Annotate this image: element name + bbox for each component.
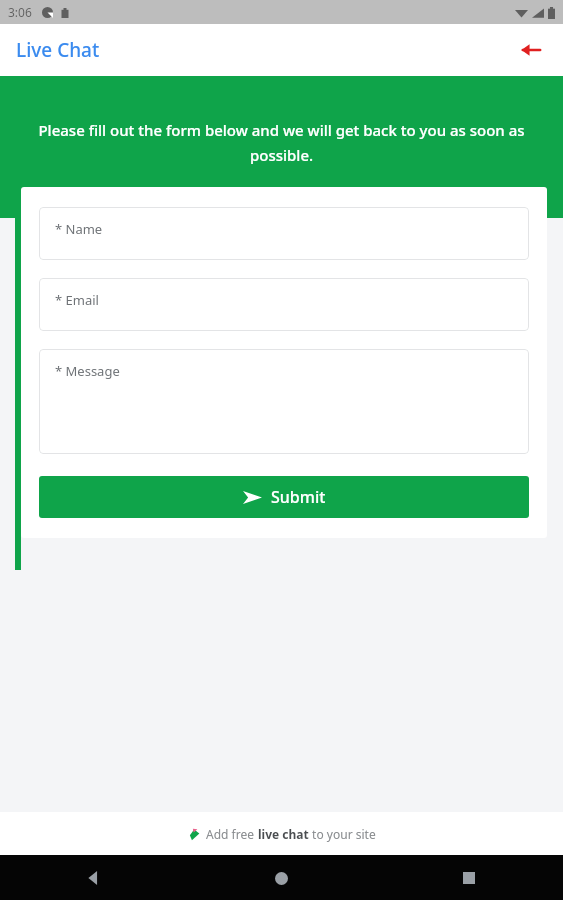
- button[interactable]: Recent apps: [449, 858, 489, 898]
- button[interactable]: Live Chat: [16, 37, 100, 63]
- staticText: 3:06: [8, 4, 32, 20]
- button[interactable]: Back: [74, 858, 114, 898]
- staticText: live chat: [258, 826, 309, 842]
- staticText: * Email: [55, 291, 99, 309]
- button[interactable]: Home: [261, 858, 301, 898]
- button[interactable]: Submit: [39, 476, 529, 518]
- button[interactable]: Back: [511, 30, 551, 70]
- button[interactable]: * Email: [39, 278, 529, 331]
- staticText: Add free: [206, 826, 258, 842]
- button[interactable]: * Message: [39, 349, 529, 454]
- button[interactable]: Add free: [187, 826, 376, 842]
- button[interactable]: * Name: [39, 207, 529, 260]
- staticText: * Message: [55, 362, 120, 380]
- staticText: Please fill out the form below and we wi…: [28, 120, 535, 165]
- staticText: to your site: [309, 826, 376, 842]
- staticText: * Name: [55, 220, 103, 238]
- staticText: Submit: [271, 486, 326, 508]
